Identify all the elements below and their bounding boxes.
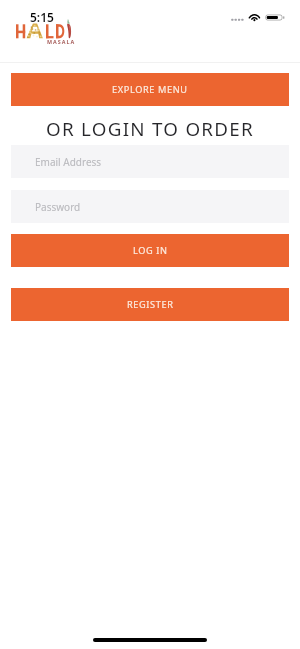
staticText: LOG IN [133, 244, 168, 257]
staticText: 5:15 [30, 9, 54, 25]
staticText: REGISTER [127, 298, 174, 311]
button[interactable]: Email Address [11, 145, 289, 178]
button[interactable]: LOG IN [11, 234, 289, 267]
staticText: Password [35, 200, 81, 214]
button[interactable]: Password [11, 190, 289, 223]
button[interactable]: EXPLORE MENU [11, 73, 289, 106]
staticText: Email Address [35, 155, 102, 169]
staticText: EXPLORE MENU [112, 83, 188, 96]
staticText: OR LOGIN TO ORDER [0, 116, 300, 142]
staticText: MASALA [47, 38, 76, 45]
button[interactable]: REGISTER [11, 288, 289, 321]
